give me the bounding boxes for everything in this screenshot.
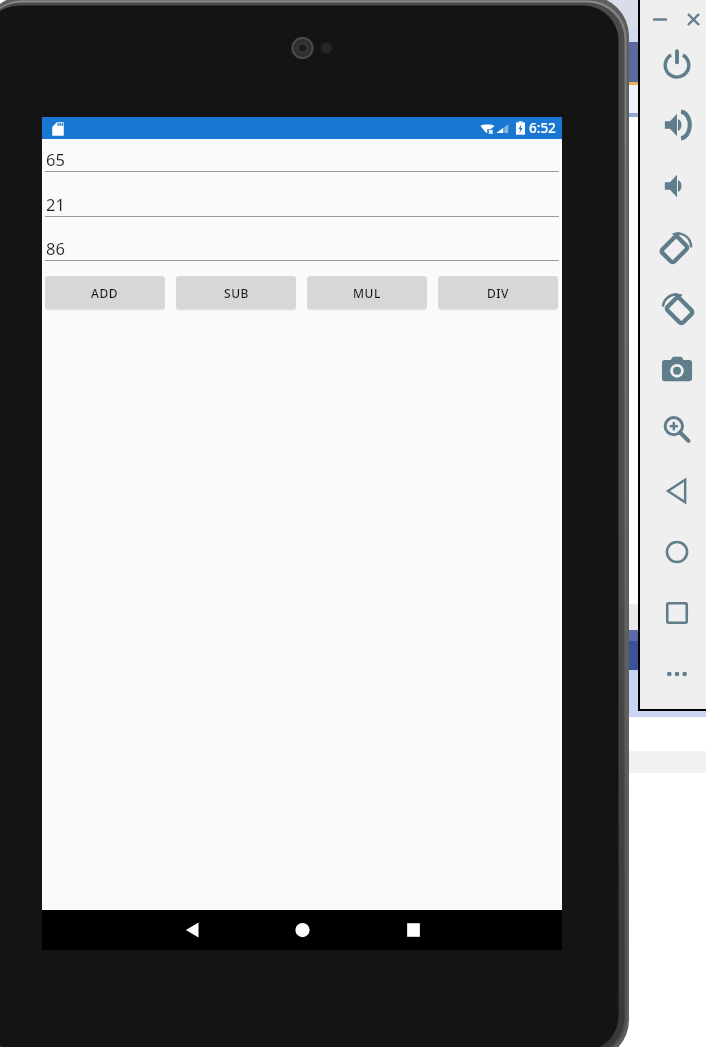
button[interactable]: Minimize <box>646 6 674 32</box>
staticText: MUL <box>353 285 381 301</box>
button[interactable]: 65 <box>45 149 559 172</box>
button[interactable]: Close <box>680 6 706 32</box>
button[interactable]: 86 <box>45 238 559 261</box>
button[interactable]: Screenshot <box>654 346 700 392</box>
button[interactable]: More options <box>654 651 700 697</box>
button[interactable]: Volume down <box>654 163 700 209</box>
button[interactable]: Recent apps <box>385 910 441 950</box>
button[interactable]: 21 <box>45 194 559 217</box>
button[interactable]: Zoom <box>654 407 700 453</box>
button[interactable]: Power <box>654 41 700 87</box>
staticText: DIV <box>487 285 510 301</box>
staticText: 86 <box>46 237 65 259</box>
staticText: 65 <box>46 148 65 170</box>
button[interactable]: ADD <box>45 276 165 309</box>
button[interactable]: MUL <box>307 276 427 309</box>
staticText: 21 <box>46 193 65 215</box>
button[interactable]: Home <box>654 529 700 575</box>
button[interactable]: DIV <box>438 276 558 309</box>
button[interactable]: SUB <box>176 276 296 309</box>
button[interactable]: Rotate left <box>654 224 700 270</box>
staticText: ADD <box>91 285 119 301</box>
button[interactable]: Rotate right <box>654 285 700 331</box>
button[interactable]: Home <box>274 910 330 950</box>
button[interactable]: Overview <box>654 590 700 636</box>
staticText: SUB <box>224 285 249 301</box>
button[interactable]: Back <box>654 468 700 514</box>
staticText: 6:52 <box>529 119 556 137</box>
button[interactable]: Volume up <box>654 102 700 148</box>
button[interactable]: Back <box>164 910 220 950</box>
